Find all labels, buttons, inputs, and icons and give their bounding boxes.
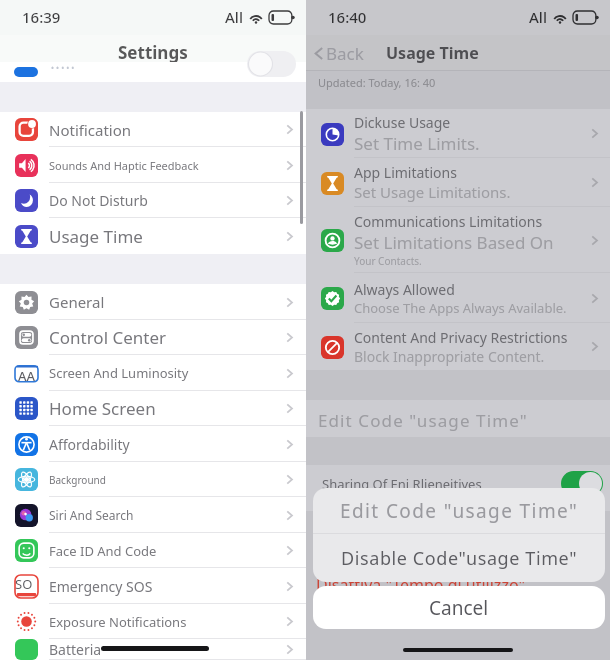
staticText: Block Inappropriate Content. bbox=[354, 347, 545, 366]
button[interactable]: Siri And Search bbox=[0, 497, 306, 533]
button[interactable]: Exposure Notifications bbox=[0, 604, 306, 639]
button[interactable]: Usage Time bbox=[0, 218, 306, 254]
staticText: Exposure Notifications bbox=[49, 613, 187, 631]
staticText: Settings bbox=[118, 41, 188, 64]
staticText: Disattiva "Tempo di utilizzo" bbox=[316, 574, 525, 596]
staticText: Control Center bbox=[49, 326, 167, 349]
staticText: Notification bbox=[49, 120, 132, 140]
staticText: Edit Code "usage Time" bbox=[318, 409, 528, 432]
staticText: 16:39 bbox=[22, 7, 61, 27]
staticText: Disable Code"usage Time" bbox=[341, 546, 578, 571]
staticText: Always Allowed bbox=[354, 280, 455, 299]
staticText: Affordability bbox=[49, 435, 130, 454]
staticText: All bbox=[225, 7, 243, 27]
button[interactable]: App Limitations bbox=[306, 158, 610, 207]
staticText: Back bbox=[326, 42, 364, 65]
staticText: Dickuse Usage bbox=[354, 113, 451, 132]
staticText: AA bbox=[18, 367, 36, 385]
staticText: Updated: Today, 16: 40 bbox=[318, 75, 436, 90]
button[interactable]: Control Center bbox=[0, 320, 306, 355]
staticText: Communications Limitations bbox=[354, 212, 543, 231]
button[interactable]: Disable Code"usage Time" bbox=[313, 534, 605, 582]
button[interactable]: SOS bbox=[0, 568, 306, 604]
staticText: Choose The Apps Always Available. bbox=[354, 299, 567, 317]
staticText: Sharing Of Eni Rlieneitives bbox=[322, 475, 482, 493]
button[interactable]: Sharing toggle bbox=[561, 471, 603, 496]
staticText: App Limitations bbox=[354, 163, 457, 182]
staticText: Siri And Search bbox=[49, 507, 134, 523]
button[interactable]: Communications Limitations bbox=[306, 207, 610, 273]
staticText: General bbox=[49, 292, 105, 312]
button[interactable]: General bbox=[0, 284, 306, 320]
staticText: Edit Code "usage Time" bbox=[340, 498, 579, 524]
button[interactable]: Dickuse Usage bbox=[306, 109, 610, 158]
button[interactable]: Content And Privacy Restrictions bbox=[306, 323, 610, 370]
button[interactable]: Edit Code "usage Time" bbox=[313, 488, 605, 533]
staticText: All bbox=[529, 7, 547, 27]
staticText: Set Time Limits. bbox=[354, 132, 480, 155]
staticText: Face ID And Code bbox=[49, 542, 157, 560]
button[interactable]: Affordability bbox=[0, 426, 306, 462]
button[interactable]: Edit Code "usage Time" bbox=[306, 400, 610, 437]
button[interactable]: Cancel bbox=[313, 586, 605, 629]
staticText: Your Contacts. bbox=[354, 254, 422, 268]
button[interactable]: AA bbox=[0, 355, 306, 391]
staticText: Set Limitations Based On bbox=[354, 231, 554, 254]
button[interactable]: Home Screen bbox=[0, 391, 306, 426]
staticText: Emergency SOS bbox=[49, 577, 153, 596]
staticText: Cancel bbox=[429, 595, 489, 621]
button[interactable]: Background bbox=[0, 462, 306, 497]
staticText: • • • • • bbox=[51, 62, 75, 73]
staticText: Usage Time bbox=[386, 42, 479, 64]
staticText: Home Screen bbox=[49, 397, 156, 420]
staticText: Batteria bbox=[49, 640, 102, 659]
button[interactable]: Back bbox=[306, 42, 364, 65]
button[interactable]: Sounds And Haptic Feedback bbox=[0, 147, 306, 183]
staticText: Content And Privacy Restrictions bbox=[354, 328, 568, 347]
button[interactable]: Do Not Disturb bbox=[0, 183, 306, 218]
button[interactable]: • • • • • bbox=[0, 62, 306, 82]
button[interactable]: Batteria bbox=[0, 639, 306, 660]
button[interactable]: Always Allowed bbox=[306, 273, 610, 323]
button[interactable]: Notification bbox=[0, 112, 306, 147]
staticText: Sounds And Haptic Feedback bbox=[49, 158, 199, 173]
staticText: Do Not Disturb bbox=[49, 191, 148, 210]
staticText: Usage Time bbox=[49, 225, 143, 248]
staticText: 16:40 bbox=[328, 7, 367, 27]
staticText: Screen And Luminosity bbox=[49, 364, 189, 382]
staticText: Background bbox=[49, 473, 106, 487]
button[interactable]: Face ID And Code bbox=[0, 533, 306, 568]
staticText: SOS bbox=[15, 575, 38, 598]
staticText: Set Usage Limitations. bbox=[354, 182, 511, 202]
